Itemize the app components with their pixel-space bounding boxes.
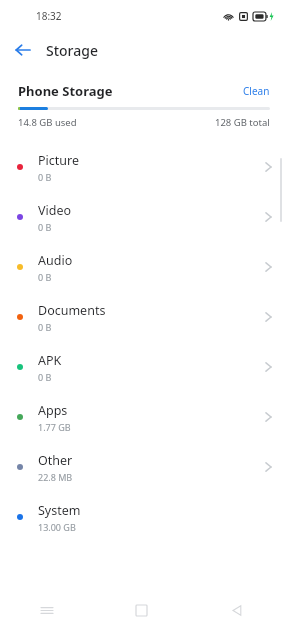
staticText: 18:32 (36, 9, 62, 23)
button[interactable]: Phone Storage (18, 82, 113, 100)
staticText: Audio (38, 252, 73, 269)
staticText: 0 B (38, 221, 52, 233)
button[interactable]: Back (8, 35, 38, 65)
button[interactable]: Apps (0, 392, 284, 442)
staticText: 14.8 GB used (18, 116, 77, 129)
staticText: Video (38, 202, 72, 219)
staticText: 0 B (38, 371, 52, 383)
button[interactable]: APK (0, 342, 284, 392)
button[interactable]: Video (0, 192, 284, 242)
button[interactable]: Audio (0, 242, 284, 292)
button[interactable]: Back (189, 590, 284, 630)
staticText: Documents (38, 302, 106, 319)
staticText: Picture (38, 152, 79, 169)
staticText: Apps (38, 402, 68, 419)
staticText: 13.00 GB (38, 521, 76, 533)
staticText: 1.77 GB (38, 421, 71, 433)
button[interactable]: Recent apps (0, 590, 94, 630)
button[interactable]: System (0, 492, 284, 542)
staticText: 0 B (38, 321, 52, 333)
staticText: 0 B (38, 171, 52, 183)
button[interactable]: Clean (243, 84, 270, 98)
staticText: Other (38, 452, 73, 469)
button[interactable]: Documents (0, 292, 284, 342)
staticText: APK (38, 352, 62, 369)
staticText: System (38, 502, 81, 519)
staticText: 22.8 MB (38, 471, 73, 483)
staticText: 0 B (38, 271, 52, 283)
button[interactable]: Home (94, 590, 189, 630)
button[interactable]: Other (0, 442, 284, 492)
button[interactable]: Picture (0, 142, 284, 192)
staticText: 128 GB total (215, 116, 270, 129)
staticText: Storage (46, 41, 98, 60)
